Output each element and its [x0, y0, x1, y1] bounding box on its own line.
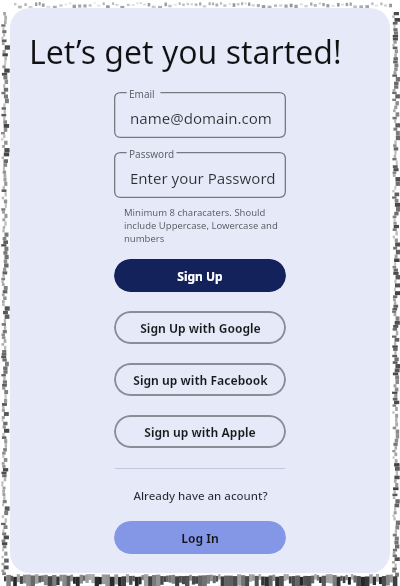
- button[interactable]: Password: [114, 152, 286, 198]
- staticText: Sign up with Facebook: [133, 372, 268, 388]
- button[interactable]: Sign Up with Google: [114, 311, 286, 344]
- button[interactable]: Log In: [114, 521, 286, 554]
- staticText: Log In: [181, 530, 219, 546]
- button[interactable]: Email: [114, 92, 286, 138]
- staticText: Password: [129, 147, 175, 161]
- staticText: Let’s get you started!: [29, 30, 342, 74]
- staticText: name@domain.com: [130, 108, 272, 128]
- button[interactable]: Sign up with Apple: [114, 415, 286, 448]
- staticText: Enter your Password: [130, 168, 276, 188]
- staticText: Already have an acount?: [133, 488, 268, 504]
- staticText: Sign Up with Google: [140, 320, 261, 336]
- staticText: Sign Up: [177, 268, 223, 284]
- button[interactable]: Sign Up: [114, 259, 286, 292]
- staticText: Minimum 8 characaters. Should include Up…: [124, 206, 282, 245]
- button[interactable]: Sign up with Facebook: [114, 363, 286, 396]
- staticText: Sign up with Apple: [144, 424, 256, 440]
- staticText: Email: [129, 87, 155, 101]
